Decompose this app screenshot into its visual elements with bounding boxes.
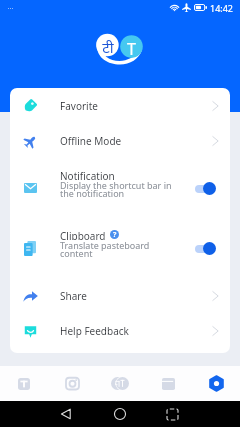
staticText: Share — [60, 289, 87, 303]
staticText: Translate pasteboard content — [60, 239, 150, 259]
staticText: 14:42 — [210, 2, 234, 14]
button[interactable]: Toggle — [195, 182, 216, 195]
button[interactable]: Share — [10, 278, 230, 313]
button[interactable]: Offline Mode — [10, 123, 230, 158]
staticText: Help Feedback — [60, 324, 129, 338]
staticText: Notification — [60, 169, 115, 180]
button[interactable]: Back — [60, 408, 72, 420]
button[interactable]: Notification — [10, 158, 230, 218]
button[interactable]: Recents — [167, 409, 178, 420]
button[interactable]: Clipboard — [10, 218, 230, 278]
button[interactable]: Help — [110, 230, 119, 239]
button[interactable]: Conversation — [96, 366, 144, 401]
button[interactable]: Settings — [192, 366, 240, 401]
button[interactable]: Toggle — [195, 242, 216, 255]
button[interactable]: Favorite — [10, 88, 230, 123]
button[interactable]: Phrasebook — [144, 366, 192, 401]
staticText: Clipboard — [60, 229, 106, 240]
staticText: Offline Mode — [60, 134, 122, 148]
button[interactable]: More — [6, 4, 15, 12]
staticText: T — [122, 38, 141, 56]
staticText: Display the shortcut bar in the notifica… — [60, 179, 172, 199]
staticText: ? — [113, 230, 117, 239]
button[interactable]: Help Feedback — [10, 313, 230, 348]
button[interactable]: Camera — [48, 366, 96, 401]
staticText: टी — [98, 37, 118, 55]
staticText: Favorite — [60, 99, 98, 113]
button[interactable]: Translate — [0, 366, 48, 401]
button[interactable]: Home — [114, 408, 126, 420]
